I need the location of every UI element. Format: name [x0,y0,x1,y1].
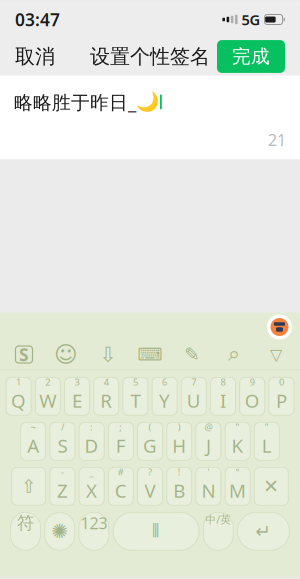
staticText: ↵ [255,521,271,542]
staticText: C [115,478,127,503]
staticText: D [85,433,99,458]
button[interactable]: ' [196,467,221,505]
staticText: G [143,433,157,458]
button[interactable]: # [108,467,133,505]
button[interactable]: Delete [254,467,288,505]
staticText: ! [178,466,181,478]
staticText: E [72,388,82,413]
button[interactable]: " [254,422,279,460]
staticText: Z [57,478,68,503]
staticText: S [19,343,29,366]
staticText: X [86,478,97,503]
staticText: 9 [250,376,255,388]
staticText: A [27,433,39,458]
button[interactable]: 7 [181,377,206,415]
button[interactable]: ) [167,422,192,460]
button[interactable]: Input assistant [267,314,292,339]
staticText: P [276,388,287,413]
staticText: Q [11,388,26,413]
button[interactable]: Shift [12,467,46,505]
button[interactable]: 5 [123,377,148,415]
staticText: ⇩ [99,343,116,366]
staticText: H [172,433,186,458]
staticText: " [265,421,269,433]
button[interactable]: Handwriting [171,339,213,369]
button[interactable]: 1 [6,377,31,415]
button[interactable]: Keyboard layout [129,339,171,369]
staticText: L [262,433,272,458]
button[interactable]: 2 [35,377,60,415]
staticText: ✎ [184,344,200,365]
button[interactable]: 4 [94,377,119,415]
button[interactable]: 完成 [217,40,285,73]
staticText: J [206,433,211,458]
button[interactable]: 123 [79,512,109,550]
button[interactable]: ; [108,422,133,460]
staticText: 21 [268,129,286,150]
staticText: O [245,388,260,413]
staticText: ✕ [263,476,279,497]
button[interactable]: : [79,422,104,460]
button[interactable]: 6 [152,377,177,415]
button[interactable]: ( [137,422,162,460]
staticText: V [144,478,155,503]
button[interactable]: 3 [64,377,89,415]
staticText: ' [207,466,209,478]
staticText: 123 [80,512,107,533]
staticText: 3 [74,376,79,388]
staticText: ~ [31,421,36,433]
button[interactable]: ~ [21,422,46,460]
staticText: 2 [45,376,50,388]
staticText: ⦀ [152,522,160,540]
button[interactable]: ° [225,467,250,505]
button[interactable]: _ [79,467,104,505]
staticText: ▽ [270,345,282,364]
button[interactable]: - [50,467,75,505]
staticText: N [201,478,215,503]
button[interactable]: 取消 [15,37,65,76]
button[interactable]: ! [167,467,192,505]
button[interactable]: Hide keyboard [255,339,297,369]
staticText: R [100,388,112,413]
button[interactable]: " [225,422,250,460]
button[interactable]: Voice input [87,339,129,369]
staticText: U [187,388,201,413]
button[interactable]: Space [113,512,199,550]
staticText: ; [119,421,122,433]
button[interactable]: 符 [10,512,40,550]
button[interactable]: 9 [240,377,265,415]
staticText: 完成 [232,45,270,68]
button[interactable]: 中/英 [203,512,233,550]
staticText: ° [236,466,240,478]
button[interactable]: Sogou input [3,339,45,369]
staticText: : [90,421,93,433]
staticText: - [61,466,64,478]
button[interactable]: Return [237,512,289,550]
staticText: @ [204,421,212,433]
staticText: 🌙 [136,91,159,112]
staticText: ✺ [51,520,68,543]
button[interactable]: Search [213,339,255,369]
staticText: 8 [220,376,225,388]
staticText: T [130,388,140,413]
button[interactable]: Emoji [45,339,87,369]
button[interactable]: 0 [269,377,294,415]
staticText: K [232,433,244,458]
staticText: ⇧ [21,476,37,497]
button[interactable]: 8 [210,377,235,415]
staticText: 取消 [15,44,55,69]
staticText: _ [90,466,94,478]
staticText: 5G [242,10,261,29]
staticText: 0 [279,376,284,388]
staticText: I [220,388,226,413]
staticText: ⌕ [228,344,240,365]
button[interactable]: @ [196,422,221,460]
staticText: 中/英 [205,512,231,526]
staticText: " [236,421,240,433]
staticText: 6 [162,376,167,388]
button[interactable]: / [50,422,75,460]
button[interactable]: Next keyboard [45,512,75,550]
button[interactable]: ? [137,467,162,505]
staticText: Y [159,388,170,413]
staticText: 4 [104,376,109,388]
